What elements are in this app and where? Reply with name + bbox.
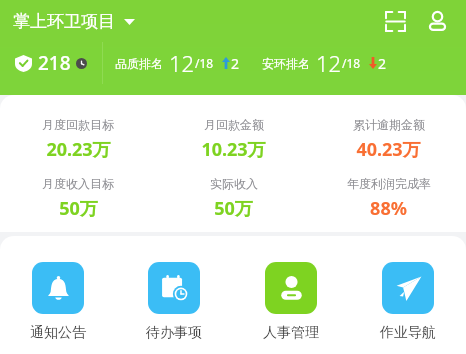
button[interactable]: 月度收入目标 xyxy=(0,176,156,221)
staticText: 218 xyxy=(38,50,71,76)
staticText: 通知公告 xyxy=(30,324,86,342)
button[interactable]: Profile xyxy=(422,6,452,36)
button[interactable]: 218 xyxy=(0,42,102,84)
button[interactable]: 通知公告 xyxy=(0,262,116,342)
staticText: 实际收入 xyxy=(210,176,258,191)
button[interactable]: 品质排名 xyxy=(115,48,240,78)
staticText: 2 xyxy=(231,54,240,73)
staticText: /18 xyxy=(342,55,361,71)
button[interactable]: Scan xyxy=(380,6,410,36)
staticText: 月回款金额 xyxy=(204,117,264,132)
staticText: 12 xyxy=(169,48,195,78)
staticText: 20.23万 xyxy=(46,137,111,162)
staticText: 安环排名 xyxy=(262,56,310,71)
button[interactable]: 待办事项 xyxy=(116,262,232,342)
button[interactable]: 人事管理 xyxy=(232,262,349,342)
staticText: 人事管理 xyxy=(263,324,319,342)
staticText: 2 xyxy=(378,54,387,73)
staticText: 年度利润完成率 xyxy=(347,176,431,191)
button[interactable]: 累计逾期金额 xyxy=(311,117,466,162)
staticText: 40.23万 xyxy=(356,137,421,162)
staticText: 作业导航 xyxy=(380,324,436,342)
button[interactable]: 安环排名 xyxy=(262,48,387,78)
staticText: 月度收入目标 xyxy=(42,176,114,191)
button[interactable]: 掌上环卫项目 xyxy=(13,11,135,32)
staticText: 10.23万 xyxy=(201,137,266,162)
button[interactable]: 作业导航 xyxy=(349,262,466,342)
staticText: 50万 xyxy=(214,196,253,221)
staticText: 待办事项 xyxy=(146,324,202,342)
staticText: 12 xyxy=(316,48,342,78)
button[interactable]: 月度回款目标 xyxy=(0,117,156,162)
staticText: 品质排名 xyxy=(115,56,163,71)
button[interactable]: 实际收入 xyxy=(156,176,311,221)
staticText: /18 xyxy=(195,55,214,71)
button[interactable]: 月回款金额 xyxy=(156,117,311,162)
staticText: 50万 xyxy=(59,196,98,221)
button[interactable]: 年度利润完成率 xyxy=(311,176,466,221)
staticText: 掌上环卫项目 xyxy=(13,11,115,32)
staticText: 88% xyxy=(370,196,407,221)
staticText: 累计逾期金额 xyxy=(353,117,425,132)
staticText: 月度回款目标 xyxy=(42,117,114,132)
